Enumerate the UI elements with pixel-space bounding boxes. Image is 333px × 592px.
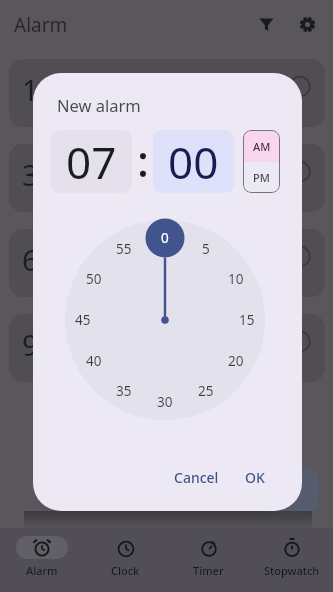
staticText: 50 bbox=[86, 270, 102, 288]
button[interactable]: OK bbox=[235, 464, 275, 490]
button[interactable] bbox=[263, 467, 319, 514]
staticText: AM bbox=[253, 139, 271, 154]
staticText: 30 bbox=[157, 393, 173, 411]
button[interactable]: 0 bbox=[149, 228, 181, 248]
staticText: 55 bbox=[116, 240, 132, 258]
staticText: PM bbox=[253, 170, 270, 185]
staticText: 00 bbox=[168, 132, 219, 192]
staticText: 07 bbox=[66, 132, 117, 192]
staticText: Stopwatch bbox=[264, 563, 320, 578]
button[interactable]: 30 bbox=[149, 392, 181, 412]
button[interactable]: 40 bbox=[78, 351, 110, 371]
staticText: 40 bbox=[86, 352, 102, 370]
button[interactable]: 07 bbox=[51, 130, 132, 193]
button[interactable]: AM bbox=[243, 130, 280, 162]
button[interactable]: Alarm bbox=[0, 528, 84, 592]
staticText: 5 bbox=[202, 240, 210, 258]
staticText: 9 bbox=[22, 325, 39, 364]
button[interactable]: 5 bbox=[190, 239, 222, 259]
button[interactable] bbox=[291, 8, 324, 41]
button[interactable]: Cancel bbox=[166, 464, 226, 490]
button[interactable]: Stopwatch bbox=[250, 528, 333, 592]
button[interactable]: 1 bbox=[9, 59, 325, 127]
button[interactable]: Timer bbox=[167, 528, 250, 592]
staticText: 10 bbox=[228, 270, 244, 288]
button[interactable]: 6 bbox=[9, 229, 325, 297]
staticText: 15 bbox=[239, 311, 255, 329]
button[interactable]: Clock bbox=[84, 528, 167, 592]
button[interactable]: 55 bbox=[108, 239, 140, 259]
button[interactable]: 20 bbox=[220, 351, 252, 371]
button[interactable]: 45 bbox=[67, 310, 99, 330]
staticText: : bbox=[137, 130, 149, 190]
staticText: Clock bbox=[111, 563, 140, 578]
button[interactable] bbox=[250, 8, 283, 41]
button[interactable]: 25 bbox=[190, 381, 222, 401]
button[interactable]: 10 bbox=[220, 269, 252, 289]
staticText: New alarm bbox=[57, 94, 141, 116]
button[interactable]: 35 bbox=[108, 381, 140, 401]
staticText: Alarm bbox=[26, 563, 58, 578]
staticText: 35 bbox=[116, 382, 132, 400]
staticText: Cancel bbox=[174, 468, 219, 487]
staticText: 1 bbox=[22, 70, 39, 109]
button[interactable]: 15 bbox=[231, 310, 263, 330]
staticText: 20 bbox=[228, 352, 244, 370]
staticText: 3 bbox=[22, 155, 39, 194]
staticText: OK bbox=[245, 468, 265, 487]
button[interactable]: 00 bbox=[153, 130, 234, 193]
staticText: 6 bbox=[22, 240, 39, 279]
staticText: Timer bbox=[193, 563, 224, 578]
staticText: 25 bbox=[198, 382, 214, 400]
button[interactable]: PM bbox=[243, 162, 280, 193]
staticText: Alarm bbox=[14, 12, 68, 38]
staticText: 45 bbox=[75, 311, 91, 329]
button[interactable]: 50 bbox=[78, 269, 110, 289]
button[interactable]: 3 bbox=[9, 144, 325, 212]
button[interactable]: 9 bbox=[9, 314, 325, 382]
staticText: 0 bbox=[161, 229, 169, 247]
